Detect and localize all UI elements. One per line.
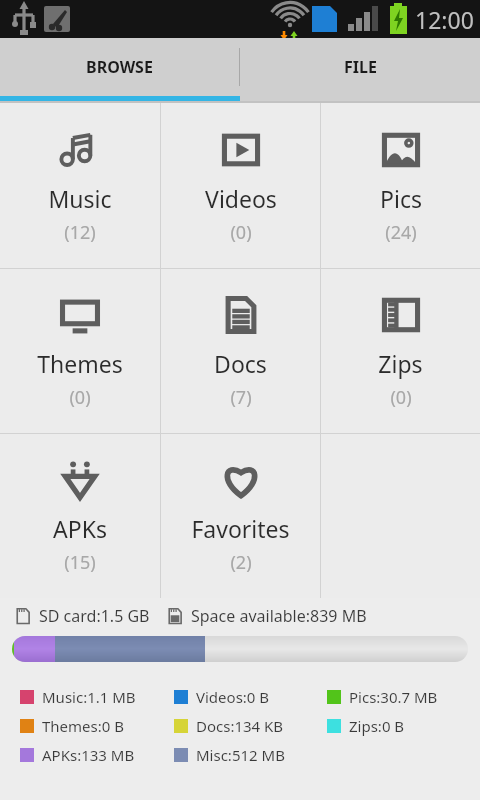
staticText: (2) <box>230 550 252 575</box>
button[interactable]: Zips <box>321 269 480 433</box>
button[interactable]: Music <box>0 103 160 268</box>
staticText: (15) <box>64 550 96 575</box>
staticText: (24) <box>385 220 417 245</box>
button[interactable]: APKs <box>0 434 160 598</box>
staticText: Videos:0 B <box>196 687 270 707</box>
staticText: (7) <box>230 385 252 410</box>
staticText: Docs:134 KB <box>196 716 284 736</box>
button[interactable]: BROWSE <box>0 38 239 96</box>
staticText: Zips <box>378 348 423 379</box>
staticText: Docs <box>214 348 267 379</box>
staticText: FILE <box>344 56 377 78</box>
staticText: SD card:1.5 GB <box>39 605 150 627</box>
staticText: (12) <box>64 220 96 245</box>
staticText: Music:1.1 MB <box>42 687 136 707</box>
staticText: BROWSE <box>86 56 153 78</box>
staticText: 12:00 <box>415 4 474 35</box>
staticText: APKs <box>53 513 107 544</box>
staticText: Space available:839 MB <box>191 605 367 627</box>
staticText: Pics <box>380 183 422 214</box>
staticText: Videos <box>205 183 277 214</box>
staticText: (0) <box>69 385 91 410</box>
staticText: Music <box>48 183 112 214</box>
staticText: Themes:0 B <box>42 716 124 736</box>
staticText: Favorites <box>191 513 290 544</box>
button[interactable]: Favorites <box>161 434 320 598</box>
staticText: Misc:512 MB <box>196 745 285 765</box>
button[interactable]: Themes <box>0 269 160 433</box>
button[interactable]: Docs <box>161 269 320 433</box>
button[interactable]: Pics <box>321 103 480 268</box>
button[interactable]: Videos <box>161 103 320 268</box>
staticText: Zips:0 B <box>349 716 405 736</box>
staticText: Themes <box>37 348 123 379</box>
button[interactable]: FILE <box>240 38 480 96</box>
staticText: Pics:30.7 MB <box>349 687 438 707</box>
staticText: (0) <box>230 220 252 245</box>
staticText: (0) <box>390 385 412 410</box>
staticText: APKs:133 MB <box>42 745 135 765</box>
